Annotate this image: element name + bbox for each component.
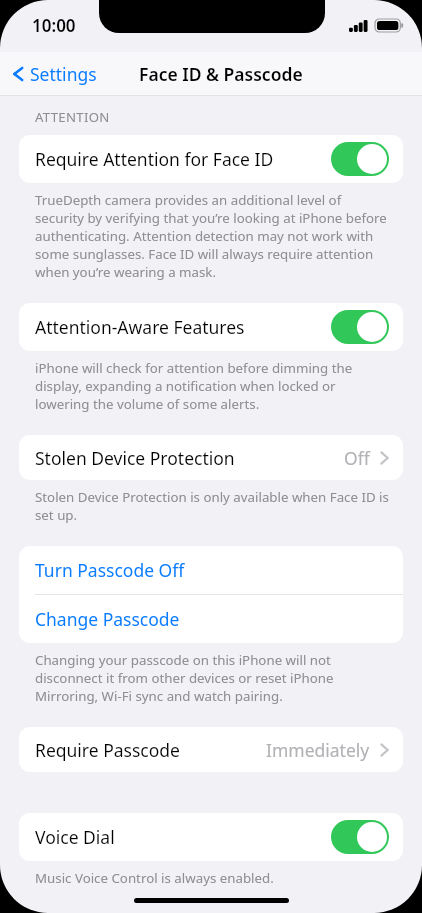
button[interactable]: Change Passcode (19, 595, 403, 643)
staticText: Attention-Aware Features (35, 315, 245, 339)
staticText: Music Voice Control is always enabled. (35, 869, 274, 887)
button[interactable]: Settings (10, 58, 99, 90)
staticText: Stolen Device Protection is only availab… (35, 488, 390, 524)
staticText: Face ID & Passcode (139, 62, 303, 86)
staticText: TrueDepth camera provides an additional … (35, 191, 390, 281)
staticText: Off (344, 446, 370, 470)
button[interactable]: Stolen Device Protection (19, 435, 403, 480)
button[interactable]: Turn Passcode Off (19, 546, 403, 594)
button[interactable]: Require Passcode (19, 727, 403, 772)
button[interactable]: Attention-Aware Features (19, 303, 403, 351)
staticText: Require Attention for Face ID (35, 147, 274, 171)
staticText: 10:00 (32, 14, 76, 37)
staticText: Settings (30, 62, 97, 86)
button[interactable]: Require Attention for Face ID (19, 135, 403, 183)
staticText: Stolen Device Protection (35, 446, 235, 470)
staticText: ATTENTION (35, 108, 110, 126)
staticText: iPhone will check for attention before d… (35, 359, 390, 413)
staticText: Immediately (266, 738, 370, 762)
staticText: Changing your passcode on this iPhone wi… (35, 651, 390, 705)
staticText: Change Passcode (35, 607, 180, 631)
staticText: Voice Dial (35, 825, 115, 849)
other: On (331, 820, 389, 854)
other: On (331, 310, 389, 344)
other: On (331, 142, 389, 176)
staticText: Require Passcode (35, 738, 180, 762)
button[interactable]: Voice Dial (19, 813, 403, 861)
staticText: Turn Passcode Off (35, 558, 185, 582)
